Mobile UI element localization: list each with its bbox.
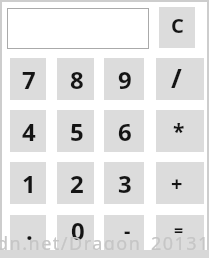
staticText: / [171,60,182,95]
staticText: 9 [118,63,132,96]
button[interactable]: 1 [10,162,46,204]
staticText: 2 [70,167,84,200]
button[interactable]: 2 [57,162,94,204]
staticText: 1 [22,167,36,200]
button[interactable]: 0 [57,215,94,257]
button[interactable]: * [156,110,204,152]
button[interactable]: 6 [104,110,144,152]
staticText: - [124,217,131,244]
staticText: dn.net/Dragon_201314 [0,231,206,257]
staticText: 7 [22,63,36,96]
staticText: . [26,214,33,247]
button[interactable]: + [156,162,204,204]
staticText: 6 [118,115,132,148]
staticText: * [173,117,185,146]
button[interactable]: C [159,7,195,48]
staticText: + [171,170,183,197]
staticText: 0 [71,214,85,247]
button[interactable]: 3 [104,162,144,204]
button[interactable] [7,8,149,49]
button[interactable]: 4 [10,110,46,152]
button[interactable]: 8 [57,58,94,100]
button[interactable]: / [156,58,204,100]
staticText: = [174,219,184,241]
button[interactable]: . [10,215,46,257]
staticText: C [171,12,184,39]
staticText: 5 [70,115,84,148]
button[interactable]: 9 [104,58,144,100]
staticText: 4 [22,115,36,148]
button[interactable]: = [156,215,204,257]
staticText: 8 [70,63,84,96]
button[interactable]: 7 [10,58,46,100]
staticText: 3 [118,167,132,200]
button[interactable]: 5 [57,110,94,152]
button[interactable]: - [104,215,144,257]
